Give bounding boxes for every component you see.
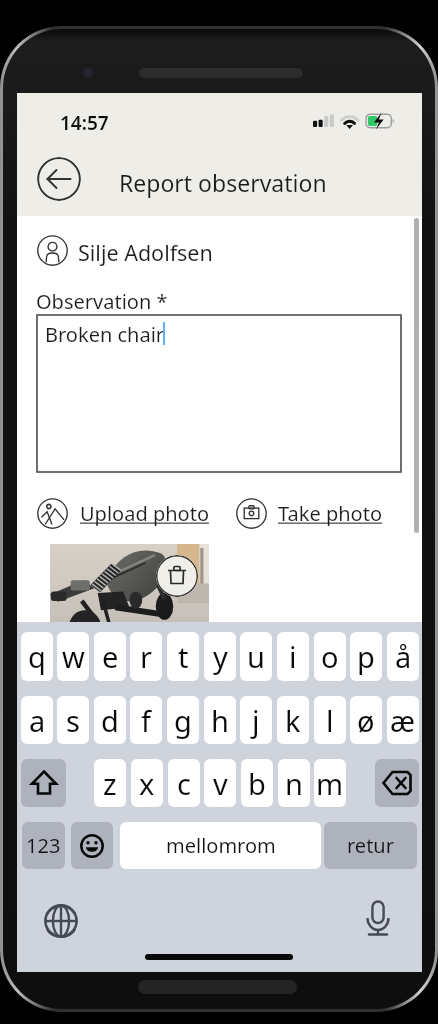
staticText: e [102, 637, 119, 676]
staticText: Observation * [36, 288, 168, 315]
button[interactable]: Delete photo [156, 555, 198, 597]
button[interactable]: w [57, 632, 89, 681]
staticText: f [141, 701, 151, 740]
button[interactable]: Upload photo [37, 498, 209, 529]
staticText: Upload photo [80, 500, 209, 527]
button[interactable]: Backspace [375, 759, 419, 807]
button[interactable]: f [130, 696, 162, 744]
staticText: b [248, 764, 266, 803]
button[interactable]: r [130, 632, 162, 681]
button[interactable]: t [167, 632, 199, 681]
staticText: u [247, 637, 265, 676]
button[interactable]: 123 [22, 822, 65, 869]
button[interactable]: e [94, 632, 126, 681]
button[interactable]: m [314, 759, 346, 807]
button[interactable]: u [240, 632, 272, 681]
staticText: x [139, 764, 155, 803]
staticText: retur [347, 832, 394, 859]
button[interactable]: Back [37, 157, 81, 201]
button[interactable]: x [131, 759, 163, 807]
button[interactable]: Take photo [236, 498, 382, 529]
staticText: k [285, 701, 301, 740]
staticText: a [29, 701, 46, 740]
button[interactable]: v [204, 759, 236, 807]
staticText: y [213, 637, 228, 676]
button[interactable]: ø [350, 696, 382, 744]
button[interactable]: d [94, 696, 126, 744]
button[interactable]: Broken chair [37, 315, 401, 472]
staticText: h [211, 701, 229, 740]
button[interactable]: b [241, 759, 273, 807]
staticText: i [289, 637, 297, 676]
staticText: å [395, 637, 412, 676]
button[interactable]: a [21, 696, 53, 744]
staticText: Take photo [278, 500, 382, 527]
staticText: q [28, 637, 46, 676]
staticText: p [357, 637, 375, 676]
button[interactable]: h [204, 696, 236, 744]
staticText: mellomrom [166, 832, 276, 859]
staticText: ø [357, 701, 375, 740]
staticText: v [213, 764, 228, 803]
button[interactable]: Emoji keyboard [71, 822, 113, 869]
staticText: l [326, 701, 334, 740]
staticText: æ [390, 701, 416, 740]
button[interactable]: z [94, 759, 126, 807]
button[interactable]: q [21, 632, 53, 681]
staticText: s [66, 701, 80, 740]
staticText: t [178, 637, 189, 676]
staticText: Silje Adolfsen [78, 238, 213, 267]
button[interactable]: mellomrom [120, 822, 321, 869]
staticText: z [103, 764, 117, 803]
button[interactable]: n [278, 759, 310, 807]
button[interactable]: g [167, 696, 199, 744]
staticText: 14:57 [60, 110, 109, 136]
button[interactable]: s [57, 696, 89, 744]
button[interactable]: Voice input [364, 899, 392, 927]
button[interactable]: c [168, 759, 200, 807]
button[interactable]: j [240, 696, 272, 744]
staticText: m [316, 764, 344, 803]
staticText: Report observation [119, 167, 327, 198]
button[interactable]: Shift [21, 759, 66, 807]
staticText: d [101, 701, 119, 740]
button[interactable]: p [350, 632, 382, 681]
staticText: o [321, 637, 339, 676]
staticText: r [140, 637, 152, 676]
button[interactable]: y [204, 632, 236, 681]
staticText: Broken chair [45, 321, 165, 348]
staticText: g [174, 701, 192, 740]
staticText: n [285, 764, 303, 803]
button[interactable]: k [277, 696, 309, 744]
staticText: j [252, 701, 260, 740]
button[interactable]: retur [324, 822, 417, 869]
button[interactable]: o [314, 632, 346, 681]
button[interactable]: æ [387, 696, 419, 744]
button[interactable]: l [314, 696, 346, 744]
button[interactable]: å [387, 632, 419, 681]
button[interactable]: Change keyboard [44, 904, 78, 938]
staticText: 123 [26, 832, 61, 859]
staticText: w [62, 637, 85, 676]
staticText: c [177, 764, 191, 803]
button[interactable]: i [277, 632, 309, 681]
